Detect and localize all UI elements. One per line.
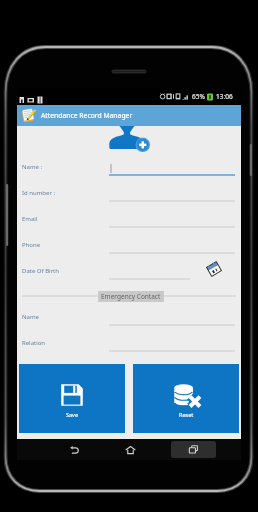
staticText: Email xyxy=(22,215,38,223)
button[interactable]: Save xyxy=(19,364,125,433)
button[interactable]: Name xyxy=(17,304,241,330)
button[interactable]: Id number : xyxy=(17,180,241,206)
button[interactable]: Relation xyxy=(17,330,241,356)
staticText: Relation xyxy=(22,339,46,347)
button[interactable]: Home xyxy=(116,441,144,459)
staticText: 65% xyxy=(192,92,205,101)
button[interactable]: Email xyxy=(17,206,241,232)
staticText: 13:06 xyxy=(216,92,233,101)
staticText: Attendance Record Manager xyxy=(41,111,133,120)
staticText: Date Of Birth xyxy=(22,267,59,275)
button[interactable]: Recents xyxy=(171,441,216,458)
staticText: Phone xyxy=(22,241,41,249)
button[interactable]: Back xyxy=(60,441,88,459)
button[interactable]: Phone xyxy=(17,232,241,258)
button[interactable]: Date Of Birth xyxy=(17,258,241,284)
staticText: Reset xyxy=(179,411,194,418)
staticText: Id number : xyxy=(22,189,56,197)
staticText: Emergency Contact xyxy=(101,292,161,301)
button[interactable]: Reset xyxy=(133,364,239,433)
staticText: Name : xyxy=(22,163,43,171)
staticText: Name xyxy=(22,313,39,321)
staticText: Save xyxy=(66,411,79,418)
button[interactable]: Name : xyxy=(17,154,241,180)
button[interactable]: Attendance Record Manager xyxy=(17,105,241,126)
